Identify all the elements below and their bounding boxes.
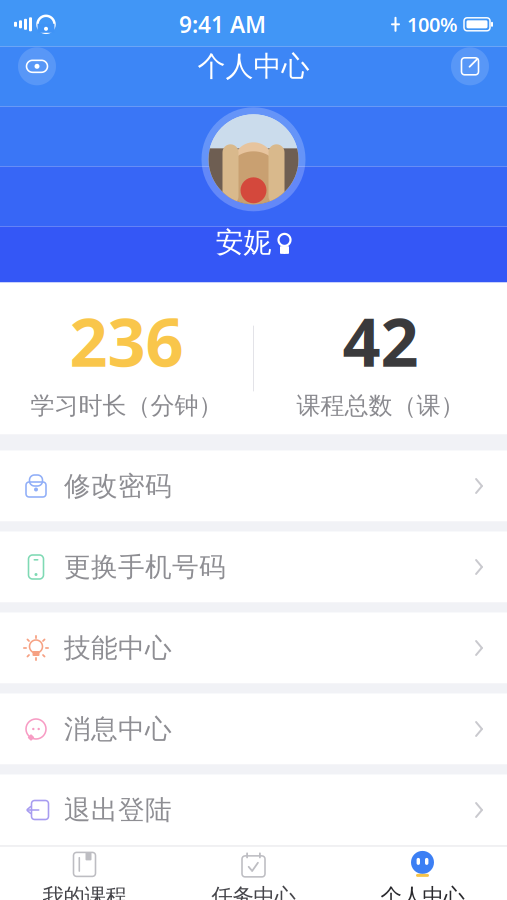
- staticText: 任务中心: [211, 883, 295, 900]
- staticText: 学习时长（分钟）: [30, 391, 222, 420]
- button[interactable]: 个人中心: [338, 846, 507, 900]
- staticText: 我的课程: [42, 883, 126, 900]
- button[interactable]: Preview: [18, 47, 56, 85]
- staticText: 技能中心: [64, 632, 172, 664]
- staticText: 42: [342, 296, 418, 385]
- staticText: 个人中心: [380, 883, 464, 900]
- button[interactable]: 我的课程: [0, 846, 169, 900]
- button[interactable]: 更换手机号码: [0, 531, 507, 602]
- staticText: 消息中心: [64, 713, 172, 745]
- staticText: 课程总数（课）: [296, 391, 464, 420]
- button[interactable]: 任务中心: [169, 846, 338, 900]
- staticText: 更换手机号码: [64, 551, 226, 583]
- staticText: 安妮: [215, 225, 271, 260]
- staticText: 个人中心: [197, 49, 309, 83]
- staticText: 100%: [407, 11, 458, 38]
- button[interactable]: Edit profile: [451, 47, 489, 85]
- button[interactable]: 消息中心: [0, 693, 507, 764]
- staticText: 修改密码: [64, 470, 172, 502]
- button[interactable]: 修改密码: [0, 450, 507, 521]
- button[interactable]: 退出登陆: [0, 774, 507, 845]
- staticText: 9:41 AM: [179, 9, 266, 39]
- staticText: 236: [69, 296, 183, 385]
- button[interactable]: 技能中心: [0, 612, 507, 683]
- staticText: 退出登陆: [64, 794, 172, 826]
